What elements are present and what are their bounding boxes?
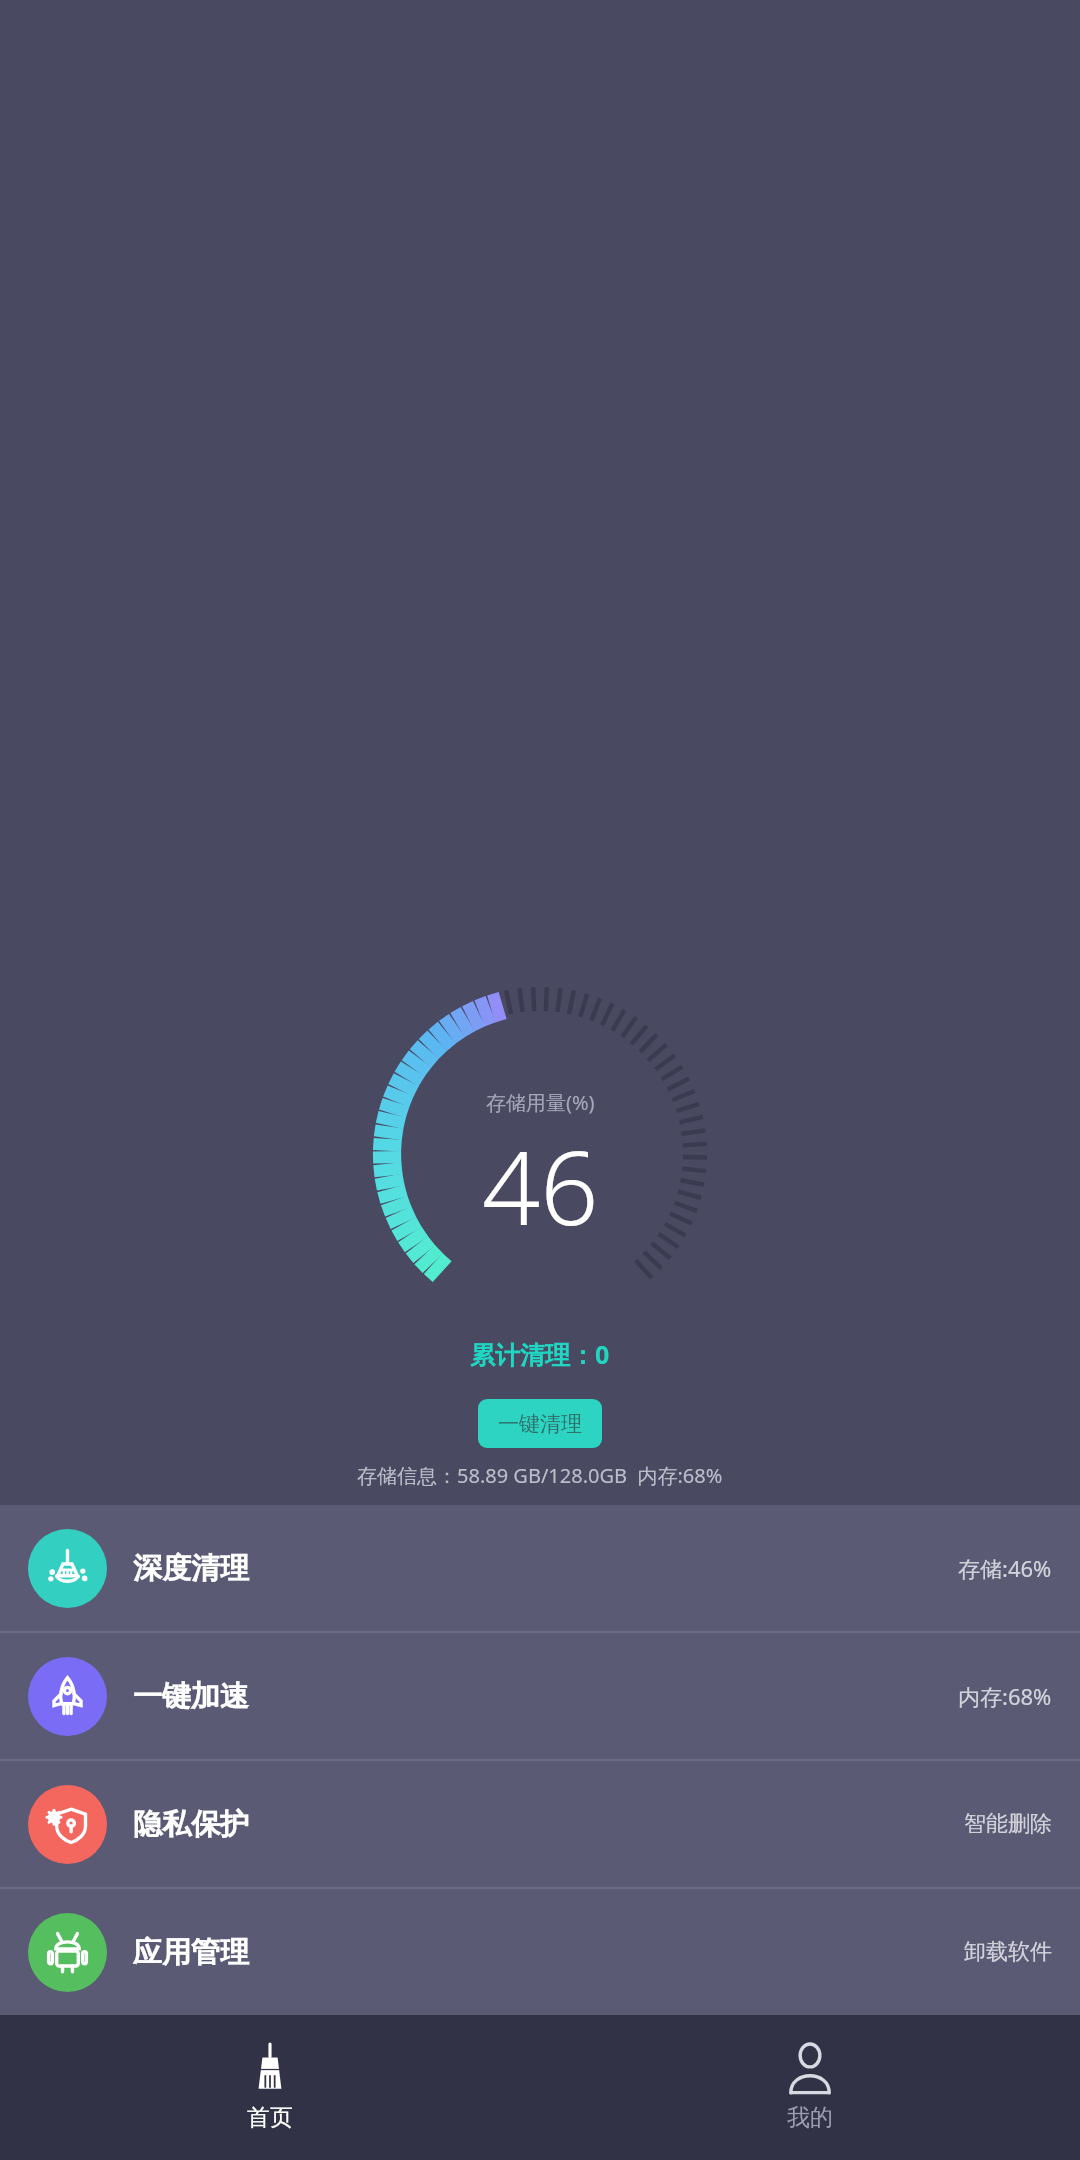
staticText: 内存:68% (958, 1681, 1052, 1711)
button[interactable]: 一键加速 (0, 1633, 1080, 1759)
other: 一键加速 (28, 1657, 107, 1736)
staticText: 智能删除 (964, 1810, 1052, 1838)
staticText: 应用管理 (133, 1934, 249, 1971)
other: 深度清理 (28, 1529, 107, 1608)
staticText: 存储:46% (958, 1553, 1052, 1583)
other: 隐私保护 (28, 1785, 107, 1864)
button[interactable]: 一键清理 (478, 1399, 602, 1448)
staticText: 深度清理 (133, 1550, 249, 1587)
button[interactable]: 深度清理 (0, 1505, 1080, 1631)
staticText: 46 (482, 1116, 599, 1255)
staticText: 卸载软件 (964, 1938, 1052, 1966)
staticText: 存储用量(%) (486, 1089, 595, 1116)
staticText: 一键清理 (498, 1411, 582, 1437)
staticText: 一键加速 (133, 1678, 249, 1715)
button[interactable]: 首页 (0, 2015, 540, 2160)
staticText: 我的 (787, 2103, 833, 2132)
staticText: 累计清理：0 (470, 1337, 610, 1371)
staticText: 首页 (247, 2103, 293, 2132)
button[interactable]: 隐私保护 (0, 1761, 1080, 1887)
staticText: 存储信息：58.89 GB/128.0GB 内存:68% (357, 1462, 723, 1489)
button[interactable]: 我的 (540, 2015, 1080, 2160)
staticText: 隐私保护 (133, 1806, 249, 1843)
button[interactable]: 应用管理 (0, 1889, 1080, 2015)
other: 应用管理 (28, 1913, 107, 1992)
